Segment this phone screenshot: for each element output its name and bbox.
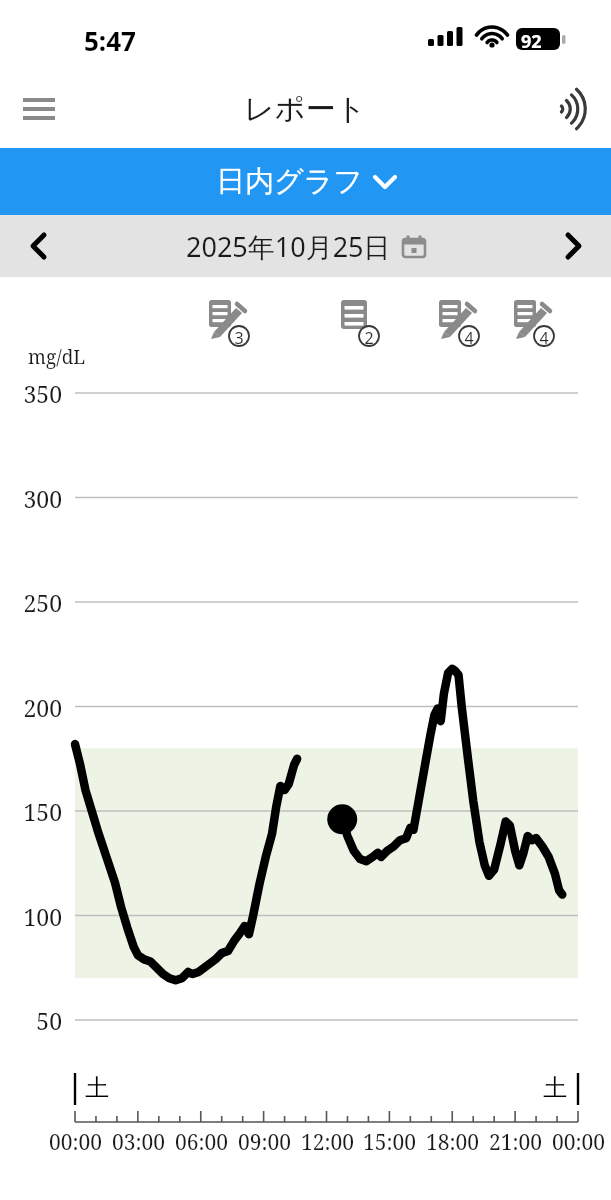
- button[interactable]: 日内グラフ: [0, 148, 611, 215]
- staticText: 200: [23, 692, 62, 723]
- staticText: 03:00: [112, 1128, 165, 1157]
- button[interactable]: Insulin events 4: [513, 298, 561, 348]
- staticText: 50: [36, 1005, 62, 1036]
- staticText: 150: [23, 796, 62, 827]
- staticText: 18:00: [426, 1128, 479, 1157]
- staticText: 250: [23, 587, 62, 618]
- button[interactable]: Next day: [547, 220, 599, 272]
- staticText: 92: [521, 29, 542, 54]
- staticText: レポート: [244, 90, 367, 128]
- button[interactable]: Insulin events 3: [208, 298, 256, 348]
- staticText: 日内グラフ: [216, 163, 364, 200]
- staticText: 2025年10月25日: [186, 228, 391, 265]
- staticText: 00:00: [552, 1128, 605, 1157]
- staticText: 12:00: [301, 1128, 354, 1157]
- staticText: 4: [538, 327, 550, 349]
- staticText: 09:00: [238, 1128, 291, 1157]
- staticText: 15:00: [363, 1128, 416, 1157]
- staticText: 土: [85, 1073, 109, 1103]
- button[interactable]: Insulin events 4: [438, 298, 486, 348]
- button[interactable]: Meal events 2: [338, 298, 386, 348]
- button[interactable]: Previous day: [12, 220, 64, 272]
- staticText: 土: [543, 1073, 567, 1103]
- button[interactable]: Menu: [14, 84, 64, 134]
- staticText: 300: [23, 483, 62, 514]
- staticText: 350: [23, 378, 62, 409]
- staticText: mg/dL: [28, 344, 86, 370]
- staticText: 4: [463, 327, 475, 349]
- button[interactable]: Transmitter signal: [545, 83, 597, 135]
- staticText: 21:00: [489, 1128, 542, 1157]
- staticText: 06:00: [175, 1128, 228, 1157]
- button[interactable]: 2025年10月25日: [186, 228, 426, 265]
- staticText: 00:00: [49, 1128, 102, 1157]
- staticText: 5:47: [84, 23, 136, 58]
- staticText: 3: [233, 327, 245, 349]
- staticText: 100: [23, 901, 62, 932]
- staticText: 2: [363, 327, 375, 349]
